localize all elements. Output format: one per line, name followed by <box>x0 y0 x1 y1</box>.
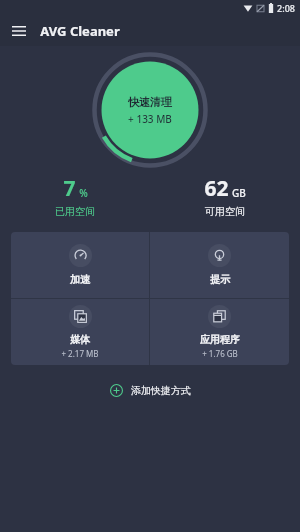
staticText: GB <box>232 186 246 200</box>
staticText: 可用空间 <box>205 205 245 218</box>
button[interactable]: Open navigation menu <box>4 16 34 46</box>
staticText: + 2.17 MB <box>61 348 99 359</box>
button[interactable]: 快速清理 <box>92 52 208 168</box>
staticText: 已用空间 <box>55 205 95 218</box>
staticText: 应用程序 <box>200 333 240 346</box>
button[interactable]: 加速 <box>11 232 149 298</box>
staticText: + 1.76 GB <box>202 348 238 359</box>
staticText: 62 <box>204 174 229 203</box>
staticText: 加速 <box>70 273 90 286</box>
button[interactable]: 提示 <box>150 232 289 298</box>
staticText: + 133 MB <box>128 112 172 126</box>
button[interactable]: 添加快捷方式 <box>100 379 201 402</box>
staticText: AVG Cleaner <box>40 22 120 40</box>
staticText: 快速清理 <box>128 95 172 109</box>
staticText: 媒体 <box>70 333 90 346</box>
staticText: 添加快捷方式 <box>131 384 191 397</box>
button[interactable]: 媒体 <box>11 299 149 365</box>
staticText: 提示 <box>210 273 230 286</box>
staticText: % <box>79 186 88 200</box>
staticText: 2:08 <box>277 2 295 14</box>
staticText: 7 <box>63 174 76 203</box>
button[interactable]: 应用程序 <box>150 299 289 365</box>
